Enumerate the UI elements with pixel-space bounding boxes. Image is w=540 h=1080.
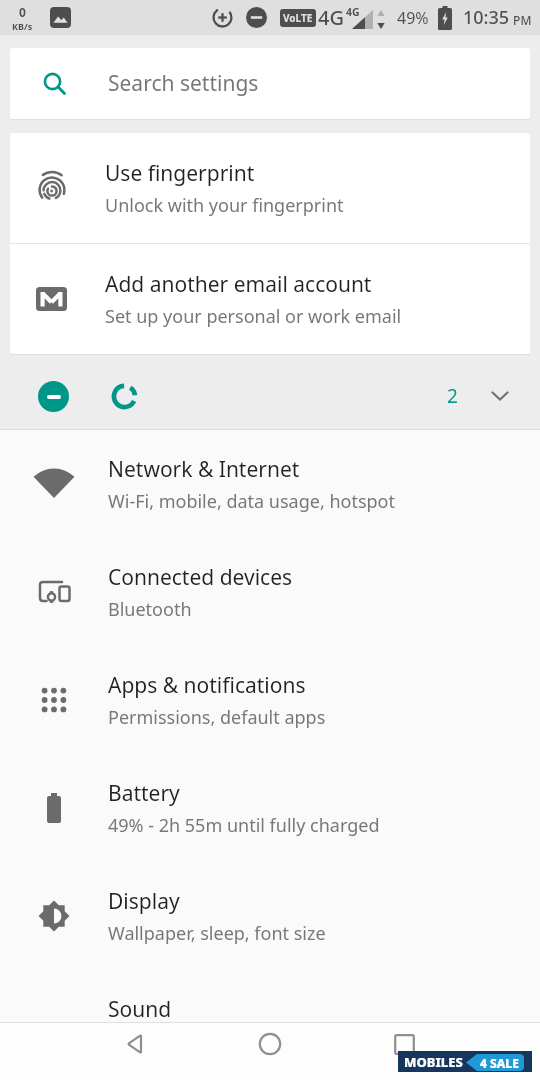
staticText: Permissions, default apps <box>108 705 326 730</box>
staticText: 49% - 2h 55m until fully charged <box>108 813 380 838</box>
staticText: Volume, vibration, Do Not Disturb <box>108 1029 394 1054</box>
button[interactable]: 2 <box>0 355 540 429</box>
button[interactable]: Display <box>0 862 540 970</box>
button[interactable]: Apps & notifications <box>0 646 540 754</box>
button[interactable]: Use fingerprint <box>10 133 530 243</box>
staticText: 10:35 <box>463 5 510 30</box>
staticText: 49% <box>397 7 429 29</box>
staticText: PM <box>510 12 532 28</box>
staticText: Add another email account <box>105 270 372 299</box>
button[interactable] <box>68 1022 202 1066</box>
staticText: 4G <box>346 5 360 19</box>
staticText: Bluetooth <box>108 597 192 622</box>
staticText: 4 SALE <box>480 1055 519 1071</box>
button[interactable]: Connected devices <box>0 538 540 646</box>
button[interactable] <box>337 1022 472 1066</box>
staticText: 0 <box>19 4 26 20</box>
staticText: 4G <box>318 4 344 31</box>
button[interactable]: Sound <box>0 970 540 1078</box>
staticText: Unlock with your fingerprint <box>105 193 344 218</box>
button[interactable] <box>202 1022 337 1066</box>
staticText: MOBILES <box>404 1053 463 1071</box>
staticText: Use fingerprint <box>105 159 255 188</box>
staticText: Display <box>108 887 180 916</box>
staticText: Connected devices <box>108 563 293 592</box>
staticText: Network & Internet <box>108 455 300 484</box>
staticText: Apps & notifications <box>108 671 306 700</box>
button[interactable]: Battery <box>0 754 540 862</box>
staticText: VoLTE <box>283 11 313 25</box>
staticText: Wallpaper, sleep, font size <box>108 921 326 946</box>
staticText: Search settings <box>108 69 259 98</box>
button[interactable]: Search settings <box>10 48 530 119</box>
staticText: Set up your personal or work email <box>105 304 402 329</box>
staticText: Wi-Fi, mobile, data usage, hotspot <box>108 489 396 514</box>
staticText: KB/s <box>12 20 33 32</box>
button[interactable]: Add another email account <box>10 244 530 354</box>
button[interactable]: Network & Internet <box>0 430 540 538</box>
staticText: Battery <box>108 779 180 808</box>
staticText: Sound <box>108 995 172 1024</box>
staticText: 2 <box>447 383 458 409</box>
